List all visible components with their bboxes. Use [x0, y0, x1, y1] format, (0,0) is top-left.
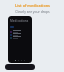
button[interactable]: [10, 30, 30, 33]
button[interactable]: [10, 36, 30, 39]
staticText: Clearly see your drops: [15, 9, 50, 13]
staticText: Medications: [10, 19, 29, 23]
button[interactable]: [10, 33, 30, 36]
button[interactable]: Next: [5, 64, 35, 70]
staticText: List of medications: [15, 3, 50, 8]
